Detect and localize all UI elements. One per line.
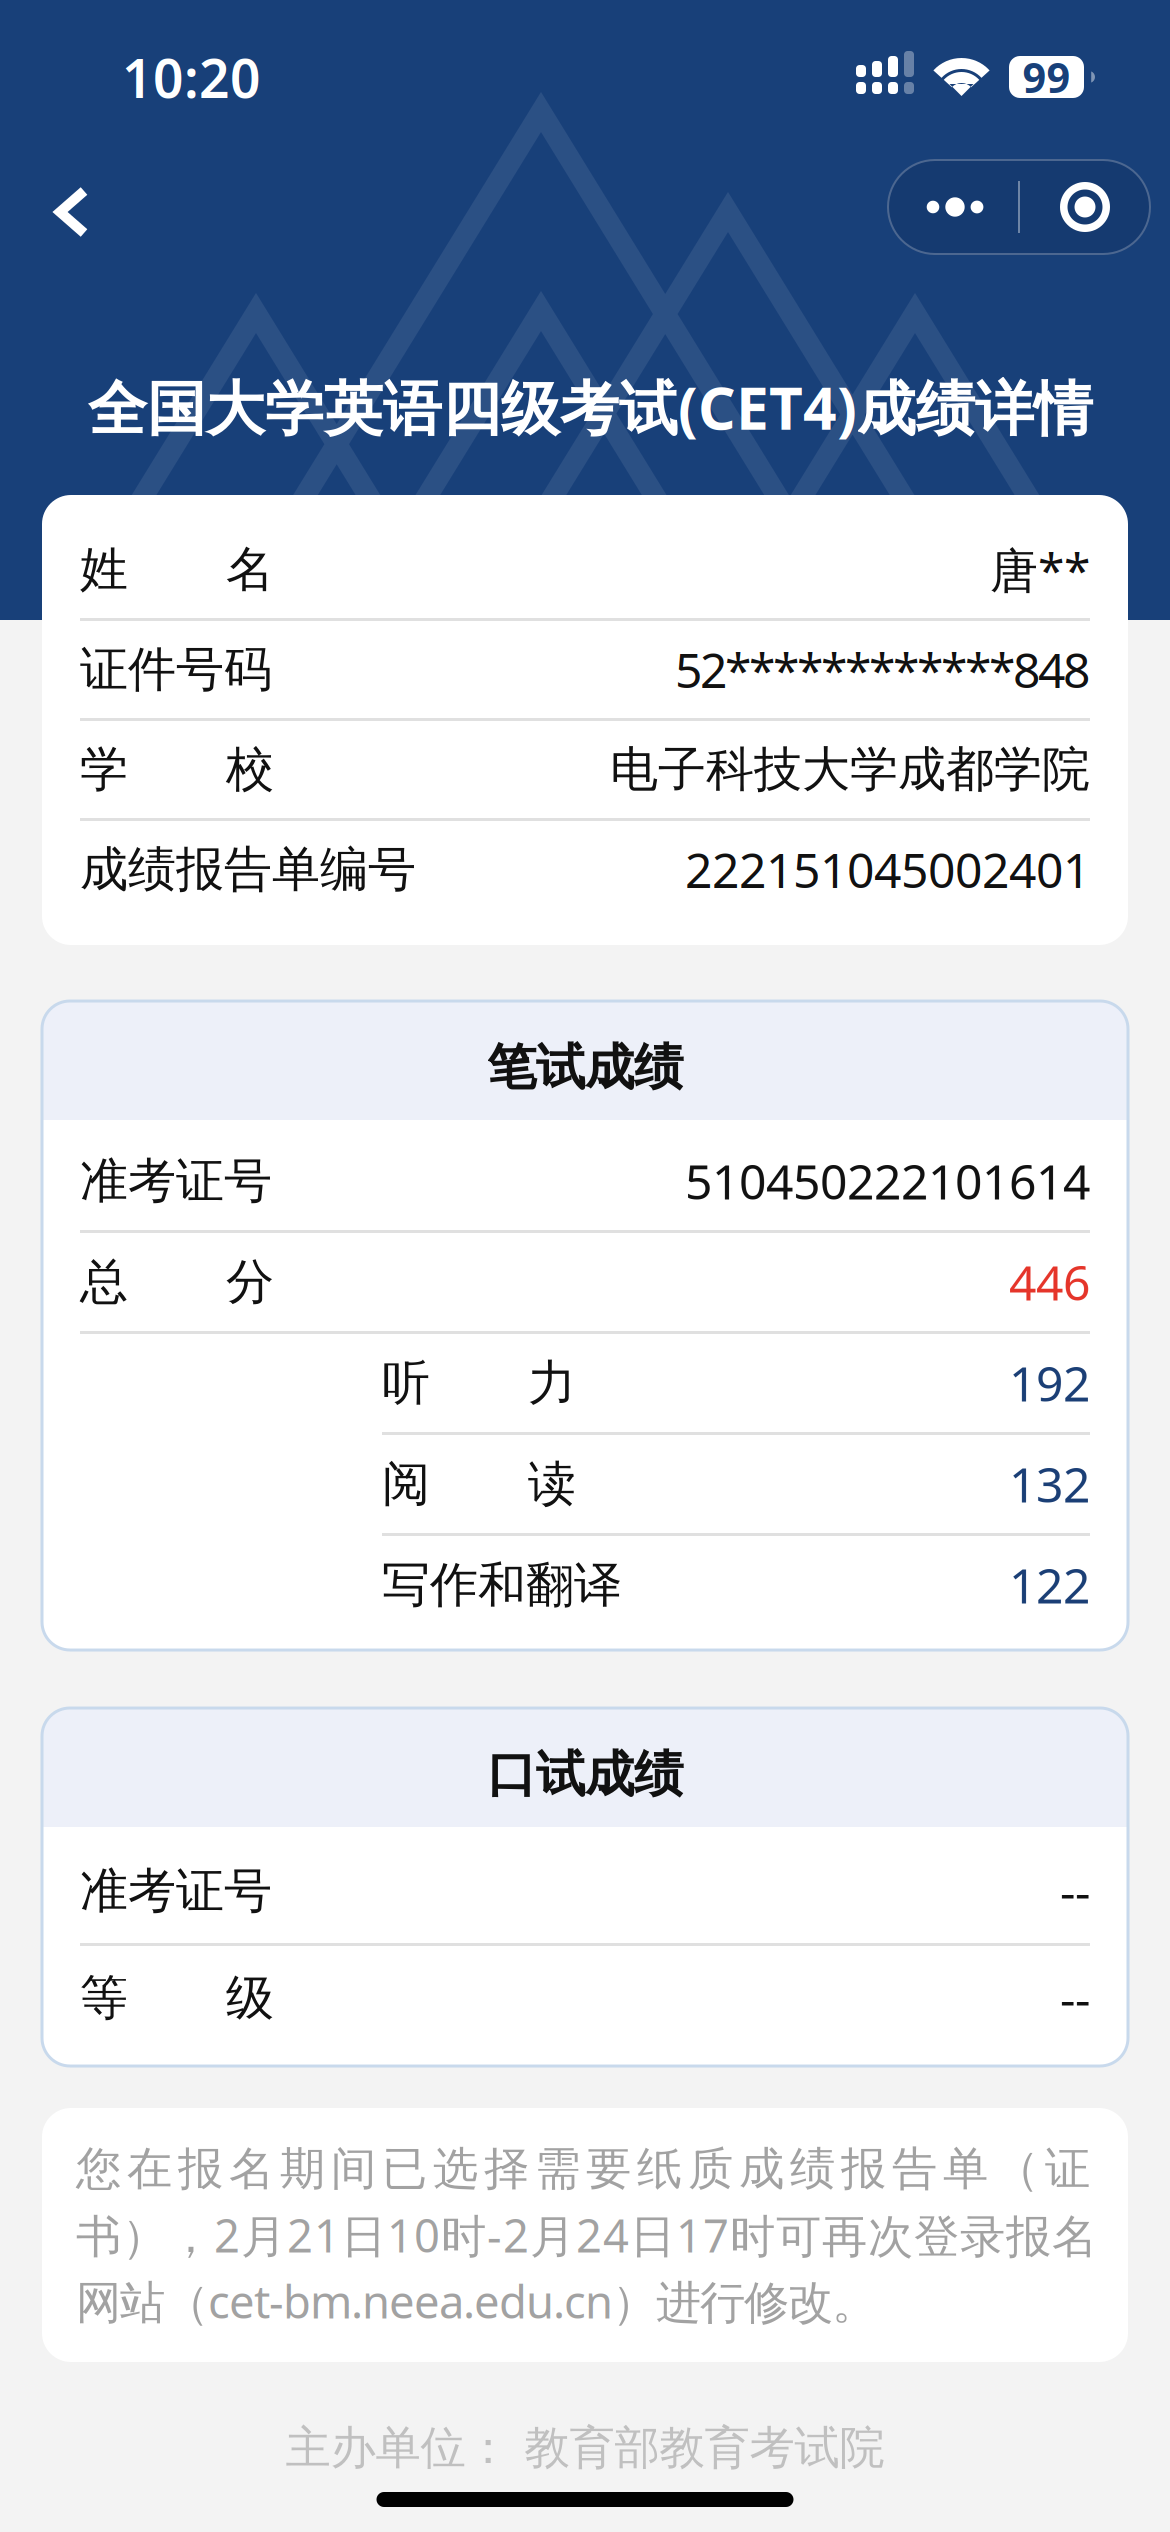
staticText: 您在报名期间已选择需要纸质成绩报告单（证 bbox=[76, 2141, 1090, 2197]
staticText: 成绩报告单编号 bbox=[80, 840, 416, 899]
staticText: 口试成绩 bbox=[487, 1744, 683, 1805]
button[interactable]: Close bbox=[1020, 160, 1150, 254]
staticText: 网站（cet-bm.neea.edu.cn）进行修改。 bbox=[76, 2271, 877, 2331]
staticText: 等 级 bbox=[80, 1968, 274, 2027]
staticText: 书），2月21日10时-2月24日17时可再次登录报名 bbox=[76, 2205, 1097, 2265]
staticText: 写作和翻译 bbox=[382, 1555, 622, 1614]
button[interactable]: Back bbox=[0, 160, 129, 254]
staticText: 222151045002401 bbox=[685, 838, 1090, 901]
staticText: 学 校 bbox=[80, 740, 274, 799]
staticText: 唐** bbox=[990, 538, 1090, 601]
staticText: 99 bbox=[1022, 50, 1070, 104]
button[interactable]: More bbox=[888, 160, 1018, 254]
staticText: 192 bbox=[1009, 1351, 1090, 1415]
staticText: 主办单位： 教育部教育考试院 bbox=[285, 2420, 884, 2476]
staticText: 总 分 bbox=[80, 1252, 274, 1311]
staticText: 姓 名 bbox=[80, 540, 274, 599]
staticText: -- bbox=[1060, 1859, 1090, 1923]
staticText: 准考证号 bbox=[80, 1151, 272, 1210]
staticText: 准考证号 bbox=[80, 1861, 272, 1920]
staticText: 446 bbox=[1009, 1250, 1090, 1314]
staticText: 10:20 bbox=[122, 42, 261, 113]
staticText: 510450222101614 bbox=[685, 1149, 1090, 1213]
staticText: 全国大学英语四级考试(CET4)成绩详情 bbox=[88, 368, 1093, 446]
staticText: 听 力 bbox=[382, 1353, 576, 1412]
staticText: 笔试成绩 bbox=[487, 1037, 683, 1098]
staticText: 52************848 bbox=[675, 638, 1090, 701]
staticText: -- bbox=[1060, 1966, 1090, 2030]
staticText: 132 bbox=[1009, 1452, 1090, 1516]
staticText: 电子科技大学成都学院 bbox=[610, 740, 1090, 799]
staticText: 阅 读 bbox=[382, 1454, 576, 1513]
staticText: 证件号码 bbox=[80, 640, 272, 699]
staticText: 122 bbox=[1009, 1553, 1090, 1617]
